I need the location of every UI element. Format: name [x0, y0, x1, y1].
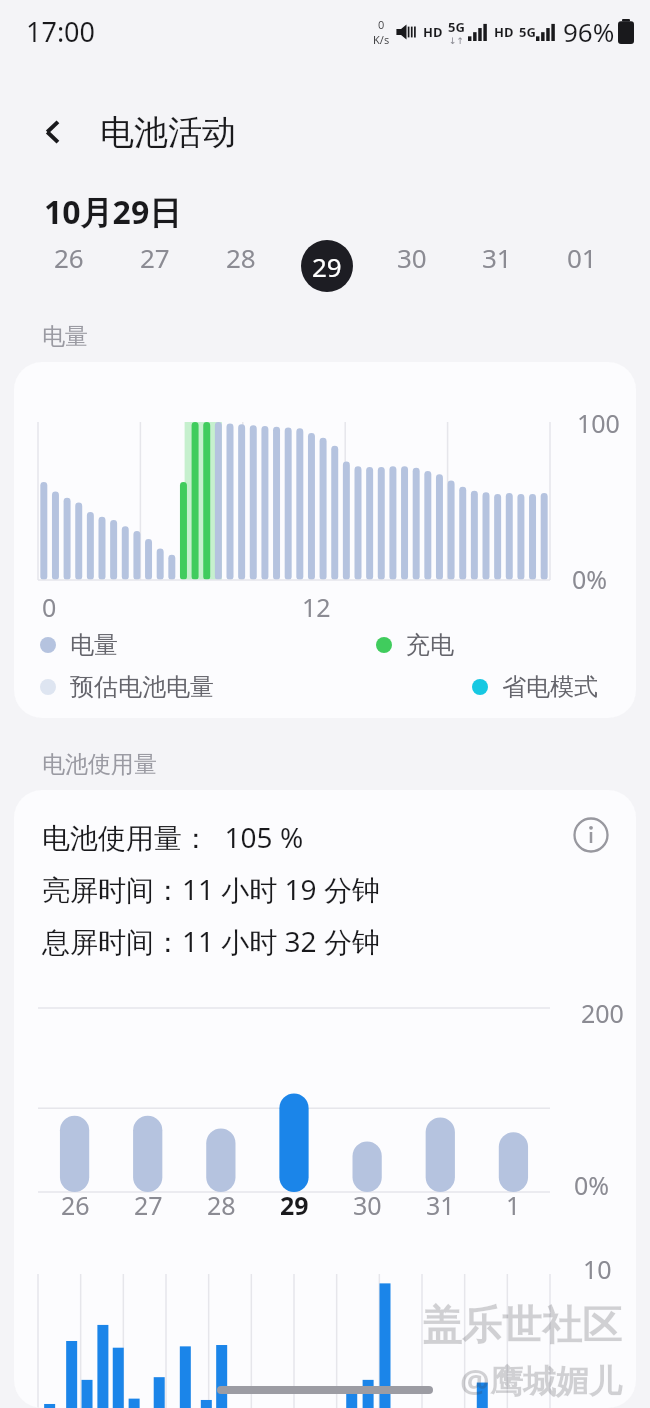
staticText: 31 — [482, 240, 512, 275]
button[interactable]: 30 — [369, 240, 454, 275]
staticText: 预估电池电量 — [70, 672, 214, 702]
button[interactable]: 31 — [454, 240, 539, 275]
staticText: HD — [423, 23, 443, 41]
button[interactable]: Info — [566, 810, 616, 860]
button[interactable]: Back — [30, 108, 78, 156]
staticText: 100 — [577, 406, 620, 440]
staticText: 10月29日 — [44, 190, 182, 234]
button[interactable]: 27 — [112, 240, 198, 275]
staticText: HD — [494, 23, 514, 41]
staticText: 30 — [397, 240, 427, 275]
staticText: 电池使用量 — [42, 750, 157, 779]
staticText: 电池活动 — [100, 111, 236, 154]
staticText: 17:00 — [26, 13, 96, 50]
button[interactable]: 29 — [284, 240, 369, 292]
staticText: 盖乐世社区 — [422, 1300, 622, 1350]
button[interactable]: 28 — [198, 240, 284, 275]
staticText: 01 — [567, 240, 597, 275]
staticText: 1 — [506, 1188, 521, 1222]
staticText: 电量 — [70, 630, 118, 660]
staticText: 26 — [54, 240, 84, 275]
staticText: 0% — [574, 1168, 610, 1202]
button[interactable]: 电池使用量： 105 % — [14, 790, 636, 1408]
staticText: 27 — [134, 1188, 163, 1222]
staticText: 28 — [226, 240, 256, 275]
staticText: K/s — [373, 32, 390, 47]
staticText: 27 — [140, 240, 170, 275]
staticText: 5G — [519, 23, 536, 41]
button[interactable]: 01 — [539, 240, 624, 275]
staticText: @鹰城媚儿 — [460, 1358, 622, 1403]
staticText: 0 — [42, 590, 57, 624]
staticText: 29 — [312, 249, 342, 284]
staticText: 0% — [572, 562, 608, 596]
staticText: 10 — [583, 1252, 612, 1286]
staticText: 31 — [426, 1188, 455, 1222]
button[interactable]: Back — [0, 96, 650, 168]
staticText: 0 — [378, 17, 385, 32]
staticText: 26 — [61, 1188, 90, 1222]
staticText: 96% — [563, 14, 615, 49]
staticText: 5G — [448, 18, 465, 36]
button[interactable]: 100 — [14, 362, 636, 718]
staticText: 28 — [207, 1188, 236, 1222]
staticText: 29 — [280, 1188, 309, 1222]
staticText: 亮屏时间：11 小时 19 分钟 — [42, 870, 380, 908]
staticText: 12 — [302, 590, 331, 624]
staticText: 200 — [581, 996, 624, 1030]
staticText: 息屏时间：11 小时 32 分钟 — [42, 922, 380, 960]
staticText: 30 — [353, 1188, 382, 1222]
staticText: ↓↑ — [449, 36, 465, 46]
staticText: 电量 — [42, 322, 88, 351]
staticText: 电池使用量： 105 % — [42, 818, 304, 856]
button[interactable]: 26 — [26, 240, 112, 275]
staticText: 充电 — [406, 630, 454, 660]
staticText: 省电模式 — [502, 672, 598, 702]
